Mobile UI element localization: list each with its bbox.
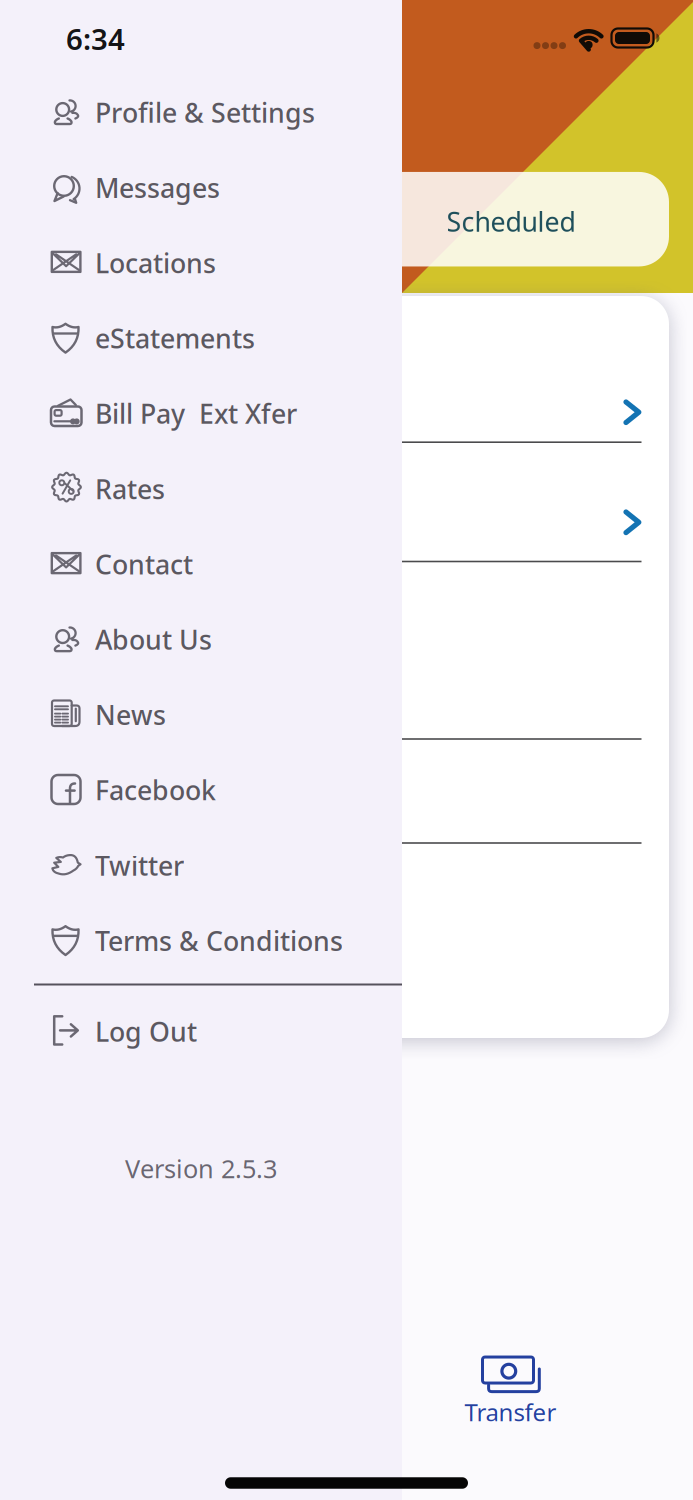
- button[interactable]: Log Out: [50, 996, 402, 1066]
- button[interactable]: Scheduled: [24, 172, 669, 266]
- button[interactable]: Facebook: [50, 755, 402, 825]
- button[interactable]: News: [50, 680, 402, 750]
- staticText: Terms & Conditions: [95, 923, 343, 958]
- staticText: Contact: [95, 546, 193, 582]
- button[interactable]: eStatements: [50, 303, 402, 373]
- button[interactable]: About Us: [50, 604, 402, 674]
- button[interactable]: Rates: [50, 454, 402, 524]
- staticText: Messages: [95, 170, 220, 205]
- button[interactable]: Twitter: [50, 830, 402, 900]
- staticText: News: [95, 697, 166, 732]
- button[interactable]: Bill Pay Ext Xfer: [50, 378, 402, 448]
- staticText: Profile & Settings: [95, 95, 315, 130]
- staticText: Transfer: [464, 1396, 556, 1428]
- button[interactable]: Profile & Settings: [50, 77, 402, 147]
- staticText: 6:34: [66, 19, 125, 58]
- staticText: Twitter: [95, 848, 184, 883]
- staticText: Bill Pay Ext Xfer: [95, 396, 297, 431]
- button[interactable]: [24, 296, 669, 442]
- staticText: Rates: [95, 471, 165, 506]
- button[interactable]: [24, 442, 669, 561]
- staticText: Log Out: [95, 1014, 197, 1049]
- button[interactable]: Messages: [50, 153, 402, 223]
- staticText: eStatements: [95, 320, 255, 356]
- staticText: Version 2.5.3: [125, 1152, 277, 1185]
- staticText: Scheduled: [446, 204, 575, 239]
- staticText: Facebook: [95, 772, 216, 808]
- button[interactable]: Terms & Conditions: [50, 906, 402, 976]
- button[interactable]: Locations: [50, 228, 402, 298]
- button[interactable]: Contact: [50, 529, 402, 599]
- staticText: Locations: [95, 245, 216, 281]
- button[interactable]: Transfer: [450, 1345, 571, 1435]
- staticText: About Us: [95, 622, 212, 657]
